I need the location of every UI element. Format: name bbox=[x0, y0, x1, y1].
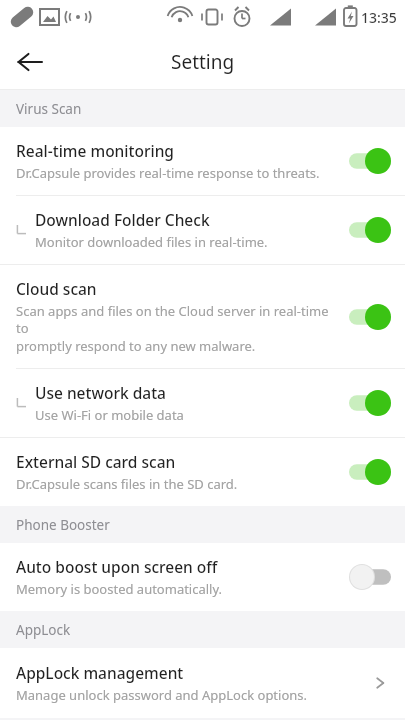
staticText: 13:35 bbox=[361, 8, 397, 27]
staticText: Download Folder Check bbox=[35, 209, 210, 230]
staticText: AppLock bbox=[16, 621, 71, 639]
button[interactable]: Auto boost upon screen off bbox=[0, 543, 405, 611]
staticText: Auto boost upon screen off bbox=[16, 556, 218, 577]
button[interactable]: AppLock management bbox=[0, 648, 405, 718]
staticText: Use Wi-Fi or mobile data bbox=[35, 406, 184, 424]
button[interactable]: Download Folder Check bbox=[0, 196, 405, 264]
button[interactable]: Use network data bbox=[0, 369, 405, 437]
button[interactable]: Real-time monitoring bbox=[0, 127, 405, 195]
button[interactable]: Toggle on bbox=[349, 304, 391, 330]
staticText: Use network data bbox=[35, 382, 166, 403]
staticText: Virus Scan bbox=[16, 100, 82, 118]
button[interactable]: External SD card scan bbox=[0, 438, 405, 506]
button[interactable]: Toggle on bbox=[349, 148, 391, 174]
button[interactable]: Toggle on bbox=[349, 390, 391, 416]
staticText: Real-time monitoring bbox=[16, 140, 174, 161]
staticText: Monitor downloaded files in real-time. bbox=[35, 233, 268, 251]
staticText: Setting bbox=[171, 49, 235, 75]
staticText: AppLock management bbox=[16, 662, 184, 683]
button[interactable]: Toggle off bbox=[349, 564, 391, 590]
button[interactable]: Cloud scan bbox=[0, 265, 405, 368]
staticText: Scan apps and files on the Cloud server … bbox=[16, 302, 341, 337]
staticText: Dr.Capsule provides real-time response t… bbox=[16, 164, 320, 182]
staticText: Dr.Capsule scans files in the SD card. bbox=[16, 475, 238, 493]
staticText: Memory is boosted automatically. bbox=[16, 580, 223, 598]
button[interactable]: Toggle on bbox=[349, 217, 391, 243]
staticText: Phone Booster bbox=[16, 516, 110, 534]
staticText: promptly respond to any new malware. bbox=[16, 337, 256, 355]
button[interactable]: Toggle on bbox=[349, 459, 391, 485]
staticText: External SD card scan bbox=[16, 451, 176, 472]
staticText: Manage unlock password and AppLock optio… bbox=[16, 686, 308, 704]
staticText: Cloud scan bbox=[16, 278, 97, 299]
button[interactable]: Back bbox=[6, 38, 54, 86]
